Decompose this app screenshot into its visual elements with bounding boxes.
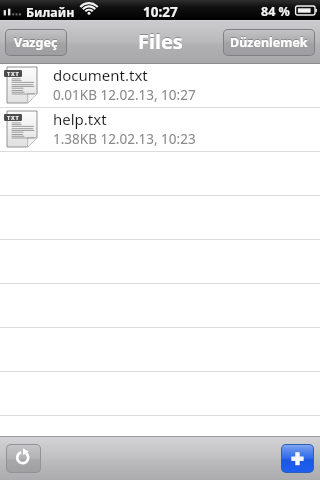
button[interactable]: TXT [0,64,320,108]
staticText: Vazgeç [14,34,58,51]
button[interactable]: Refresh [7,445,40,472]
staticText: TXT [7,70,20,77]
button[interactable]: Vazgeç [6,30,66,55]
staticText: 84 % [261,3,290,20]
staticText: Files [138,28,183,55]
staticText: Düzenlemek [230,34,308,51]
staticText: 1.38KB 12.02.13, 10:23 [53,130,196,148]
staticText: 0.01KB 12.02.13, 10:27 [53,86,196,104]
button[interactable]: Düzenlemek [224,30,314,55]
button[interactable]: TXT [0,108,320,152]
staticText: Билайн [26,4,75,21]
staticText: 10:27 [143,3,178,21]
staticText: TXT [7,114,20,121]
staticText: document.txt [53,65,148,85]
button[interactable]: Add [282,445,313,472]
staticText: help.txt [53,109,107,129]
